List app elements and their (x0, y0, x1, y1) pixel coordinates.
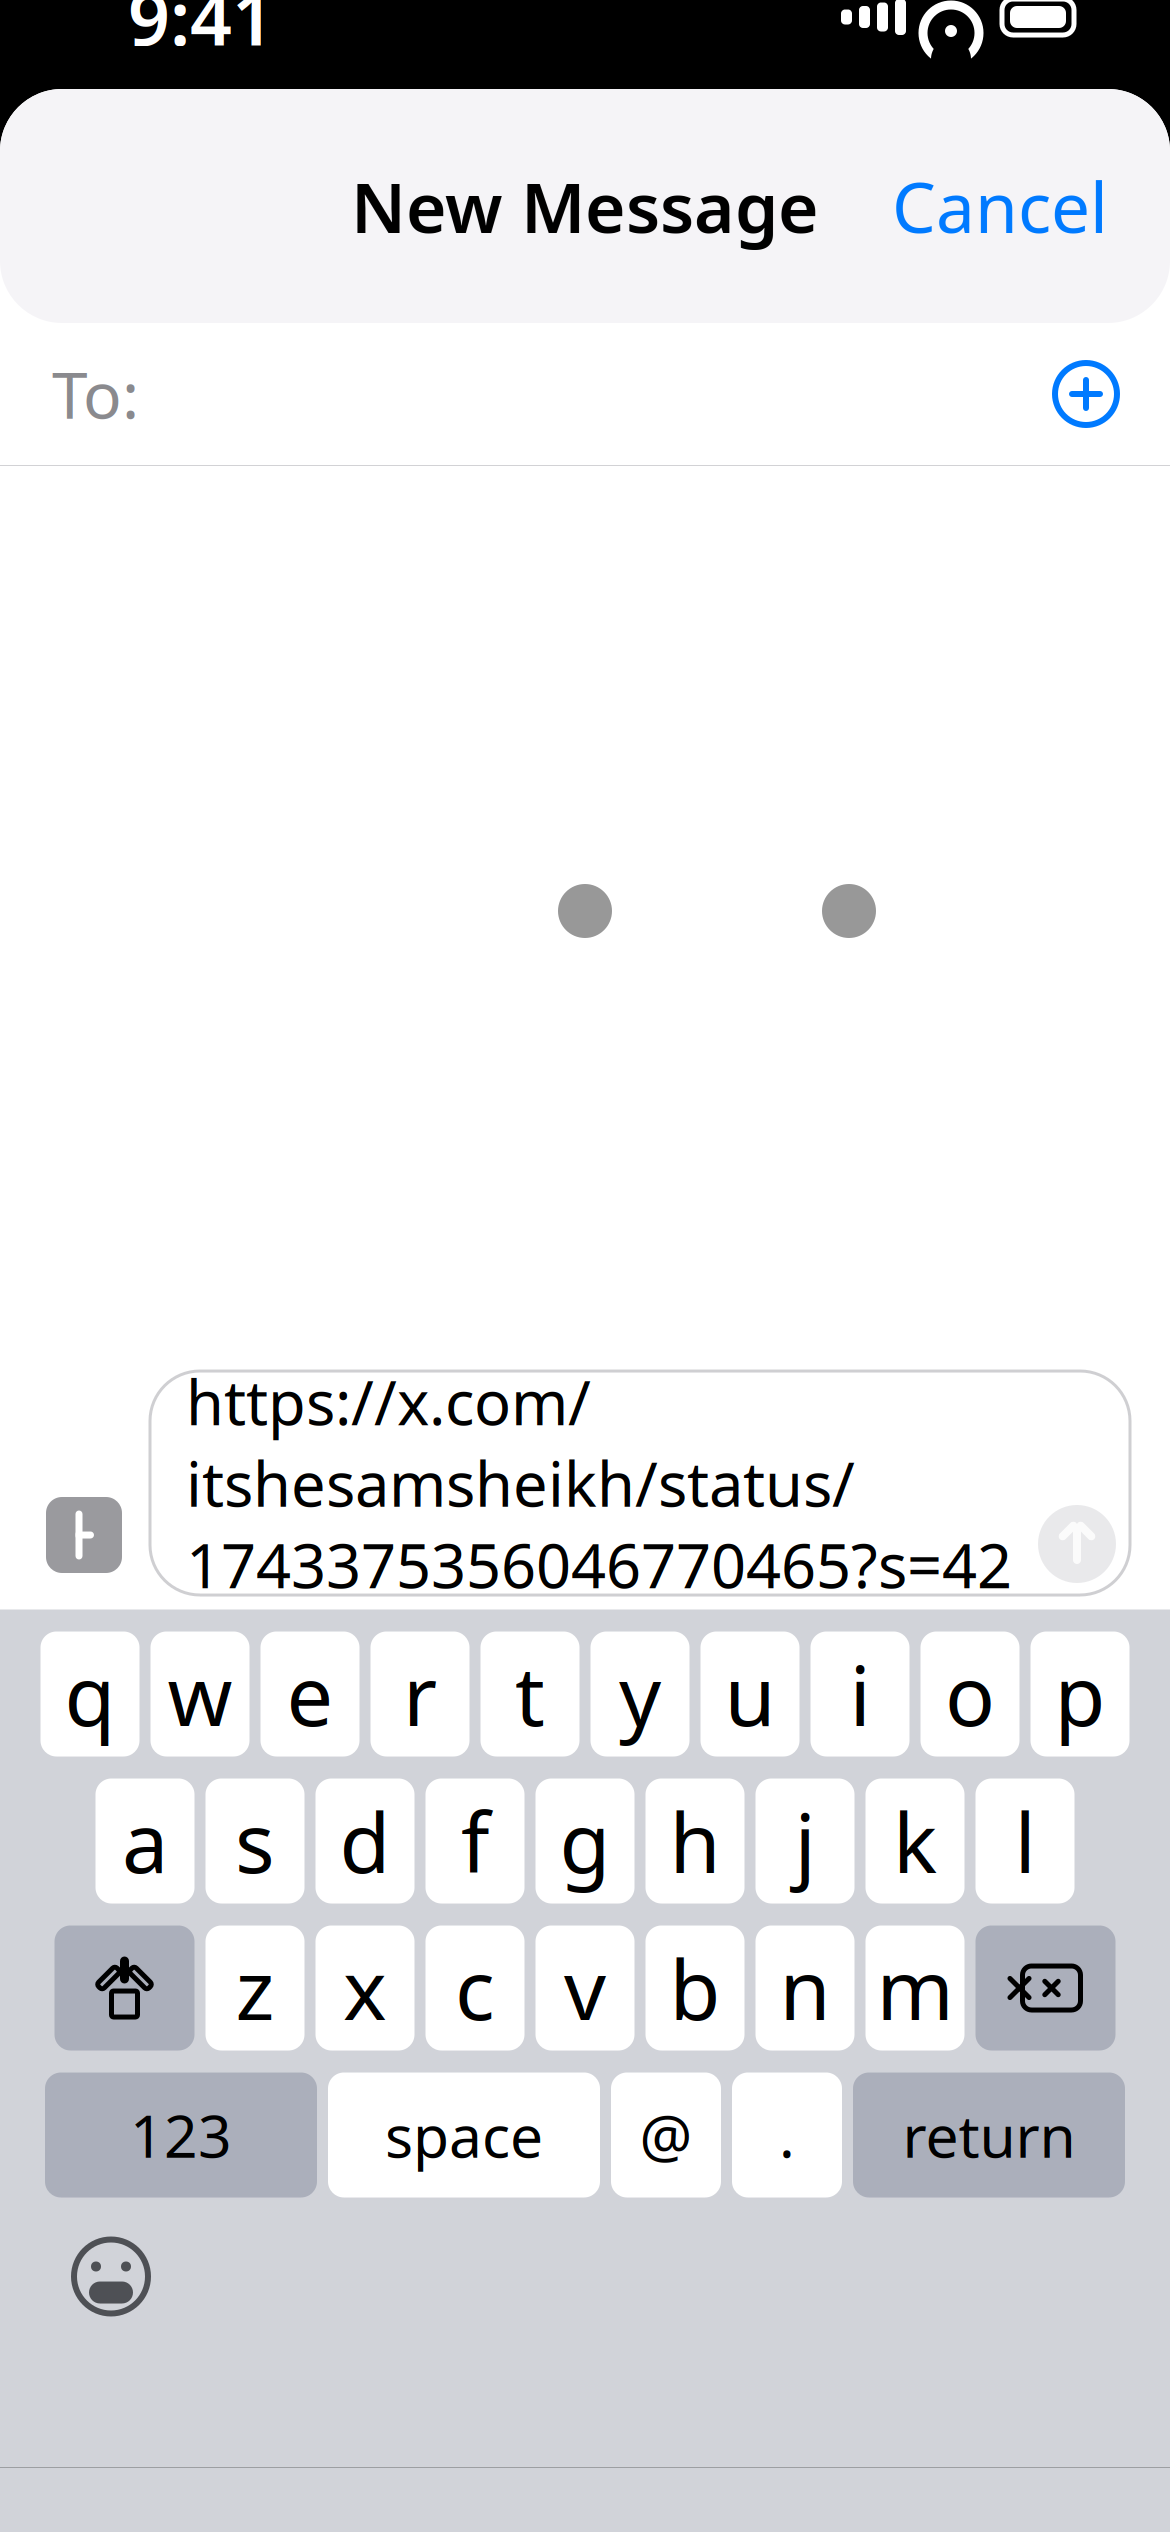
button[interactable]: w (150, 1631, 249, 1756)
button[interactable]: Shift (54, 1925, 194, 2050)
button[interactable]: space (328, 2072, 600, 2197)
button[interactable]: y (590, 1631, 689, 1756)
button[interactable]: 123 (45, 2072, 317, 2197)
button[interactable]: h (645, 1778, 744, 1903)
staticText: v (564, 1933, 606, 2043)
staticText: return (902, 2096, 1075, 2174)
button[interactable]: d (315, 1778, 414, 1903)
staticText: i (849, 1639, 870, 1749)
button[interactable]: s (205, 1778, 304, 1903)
button[interactable]: e (260, 1631, 359, 1756)
button[interactable]: a (95, 1778, 194, 1903)
button[interactable]: j (755, 1778, 854, 1903)
button[interactable]: x (315, 1925, 414, 2050)
staticText: l (1014, 1786, 1035, 1896)
button[interactable]: n (755, 1925, 854, 2050)
button[interactable]: m (865, 1925, 964, 2050)
staticText: m (876, 1933, 953, 2043)
staticText: https://x.com/itshesamsheikh/status/1743… (186, 1361, 1012, 1605)
staticText: r (403, 1639, 437, 1749)
button[interactable]: t (480, 1631, 579, 1756)
staticText: Cancel (892, 160, 1108, 252)
button[interactable]: v (535, 1925, 634, 2050)
button[interactable]: . (732, 2072, 842, 2197)
staticText: f (461, 1786, 489, 1896)
staticText: To: (52, 351, 139, 436)
staticText: k (893, 1786, 937, 1896)
button[interactable]: u (700, 1631, 799, 1756)
button[interactable]: Emoji (56, 2221, 166, 2331)
staticText: t (515, 1639, 545, 1749)
staticText: j (794, 1786, 815, 1896)
button[interactable]: z (205, 1925, 304, 2050)
staticText: b (669, 1933, 720, 2043)
button[interactable]: f (425, 1778, 524, 1903)
button[interactable]: b (645, 1925, 744, 2050)
staticText: New Message (351, 160, 819, 252)
staticText: p (1054, 1639, 1105, 1749)
staticText: h (669, 1786, 720, 1896)
staticText: q (64, 1639, 115, 1749)
staticText: a (122, 1786, 168, 1896)
button[interactable]: o (920, 1631, 1019, 1756)
staticText: g (559, 1786, 610, 1896)
staticText: y (619, 1639, 661, 1749)
staticText: n (779, 1933, 830, 2043)
staticText: d (339, 1786, 390, 1896)
button[interactable]: p (1030, 1631, 1129, 1756)
button[interactable]: q (40, 1631, 139, 1756)
staticText: c (455, 1933, 495, 2043)
button[interactable]: c (425, 1925, 524, 2050)
staticText: 9:41 (128, 0, 274, 66)
staticText: u (724, 1639, 775, 1749)
staticText: 123 (130, 2096, 232, 2174)
staticText: @ (639, 2096, 692, 2174)
staticText: z (235, 1933, 274, 2043)
staticText: e (286, 1639, 333, 1749)
button[interactable]: Show app drawer (46, 1497, 122, 1573)
button[interactable]: Delete (975, 1925, 1115, 2050)
button[interactable]: i (810, 1631, 909, 1756)
staticText: x (343, 1933, 387, 2043)
button[interactable]: l (975, 1778, 1074, 1903)
staticText: . (779, 2096, 795, 2174)
button[interactable]: Send (1038, 1505, 1116, 1583)
button[interactable]: Add contact (1038, 346, 1134, 442)
staticText: s (235, 1786, 275, 1896)
button[interactable]: @ (611, 2072, 721, 2197)
staticText: space (385, 2096, 543, 2174)
button[interactable]: Cancel (866, 138, 1134, 274)
button[interactable]: return (853, 2072, 1125, 2197)
staticText: w (167, 1639, 232, 1749)
staticText: o (945, 1639, 995, 1749)
button[interactable]: r (370, 1631, 469, 1756)
button[interactable]: k (865, 1778, 964, 1903)
button[interactable]: g (535, 1778, 634, 1903)
